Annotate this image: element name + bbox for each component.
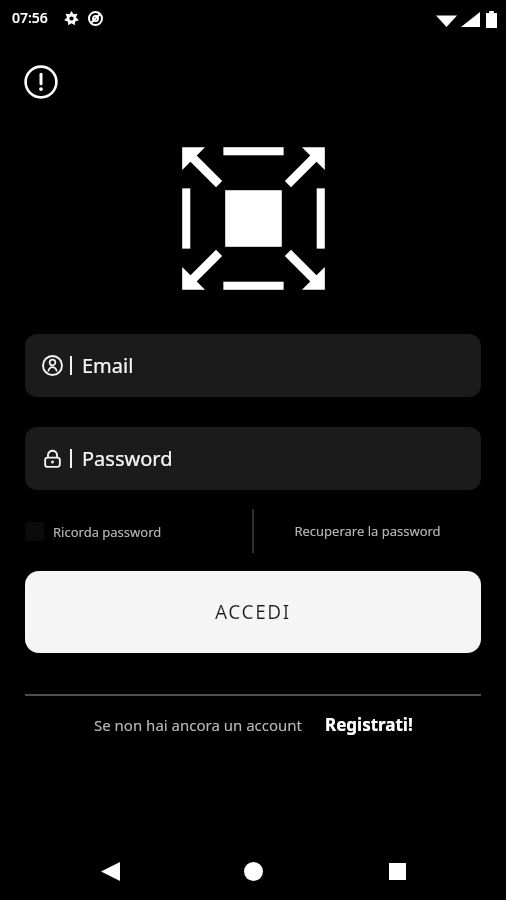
button[interactable]: Home — [231, 849, 275, 893]
staticText: Ricorda password — [53, 523, 162, 541]
staticText: Password — [82, 445, 173, 472]
button[interactable]: ACCEDI — [25, 571, 481, 653]
staticText: Registrati! — [325, 713, 413, 736]
button[interactable]: Recuperare la password — [254, 522, 481, 540]
button[interactable]: Password — [25, 427, 481, 490]
staticText: Se non hai ancora un account — [94, 715, 303, 735]
button[interactable]: Info — [21, 62, 61, 102]
staticText: Email — [82, 352, 134, 379]
button[interactable]: Registrati! — [325, 713, 413, 736]
button[interactable]: Ricorda password — [25, 522, 252, 541]
button[interactable]: Recent apps — [375, 849, 419, 893]
button[interactable]: Email — [25, 334, 481, 397]
staticText: Recuperare la password — [294, 522, 441, 540]
staticText: 07:56 — [12, 8, 48, 27]
staticText: ACCEDI — [215, 599, 291, 625]
button[interactable]: Back — [88, 849, 132, 893]
